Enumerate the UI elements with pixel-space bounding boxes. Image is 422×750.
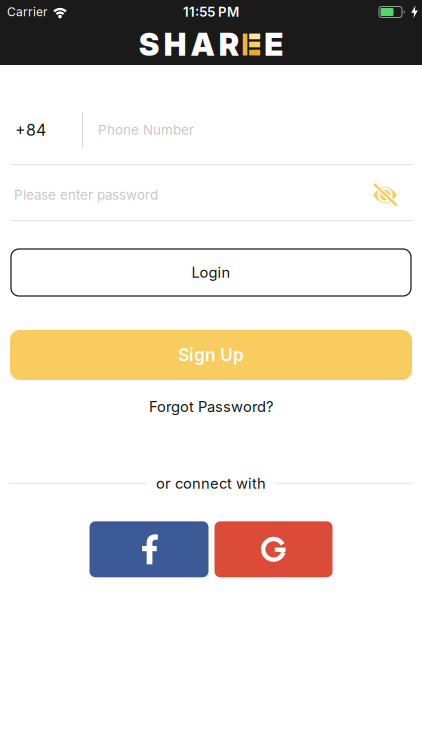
staticText: A <box>191 26 215 63</box>
staticText: R <box>219 26 239 63</box>
staticText: Sign Up <box>178 345 244 365</box>
staticText: Phone Number <box>98 122 194 138</box>
button[interactable]: Forgot Password? <box>149 398 273 415</box>
staticText: Login <box>191 264 230 281</box>
staticText: S <box>139 26 160 63</box>
button[interactable]: Continue with Google <box>214 521 332 577</box>
staticText: or connect with <box>156 475 266 492</box>
staticText: Please enter password <box>14 187 158 203</box>
staticText: Forgot Password? <box>149 398 273 415</box>
button[interactable]: Sign Up <box>0 330 422 380</box>
staticText: E <box>264 26 283 63</box>
button[interactable]: Show password <box>373 185 397 205</box>
staticText: H <box>164 26 187 63</box>
staticText: 11:55 PM <box>183 4 239 20</box>
staticText: Carrier <box>7 5 48 19</box>
staticText: +84 <box>15 121 46 139</box>
button[interactable]: Continue with Facebook <box>89 521 208 577</box>
button[interactable]: Login <box>0 249 422 296</box>
